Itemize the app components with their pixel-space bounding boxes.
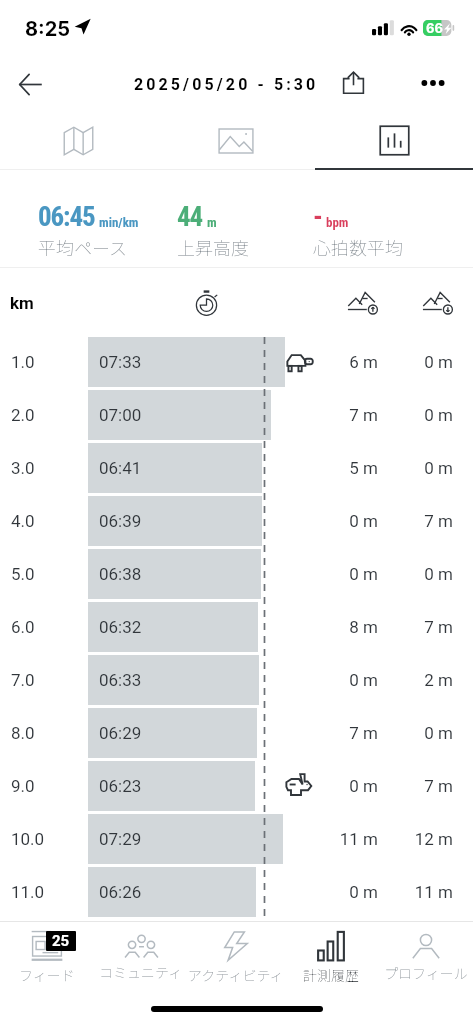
staticText: 0 m bbox=[398, 352, 453, 372]
staticText: 07:00 bbox=[99, 405, 142, 425]
button[interactable]: 6.0 bbox=[0, 602, 473, 655]
button[interactable]: 4.0 bbox=[0, 496, 473, 549]
button[interactable]: Photos bbox=[157, 112, 315, 169]
button[interactable]: アクティビティ bbox=[188, 922, 283, 993]
button[interactable]: 11.0 bbox=[0, 867, 473, 920]
button[interactable]: Charts bbox=[315, 112, 473, 169]
staticText: 06:45 bbox=[38, 201, 95, 233]
button[interactable]: Map bbox=[0, 112, 157, 169]
button[interactable]: 25 bbox=[0, 922, 94, 993]
staticText: m bbox=[207, 215, 217, 230]
button[interactable]: 5.0 bbox=[0, 549, 473, 602]
staticText: 7 m bbox=[398, 617, 453, 637]
staticText: 5 m bbox=[323, 458, 378, 478]
staticText: 11.0 bbox=[11, 882, 45, 902]
staticText: km bbox=[10, 293, 34, 313]
button[interactable]: 3.0 bbox=[0, 443, 473, 496]
staticText: 4.0 bbox=[11, 511, 35, 531]
staticText: 0 m bbox=[323, 670, 378, 690]
staticText: 07:29 bbox=[99, 829, 142, 849]
staticText: 6.0 bbox=[11, 617, 35, 637]
button[interactable]: プロフィール bbox=[378, 922, 473, 993]
staticText: 06:41 bbox=[99, 458, 142, 478]
staticText: 7 m bbox=[323, 723, 378, 743]
staticText: 9.0 bbox=[11, 776, 35, 796]
staticText: 0 m bbox=[323, 776, 378, 796]
staticText: min/km bbox=[99, 215, 139, 230]
staticText: 25 bbox=[52, 932, 70, 950]
staticText: 5.0 bbox=[11, 564, 35, 584]
staticText: 2.0 bbox=[11, 405, 35, 425]
staticText: 06:29 bbox=[99, 723, 142, 743]
staticText: 66 bbox=[426, 20, 443, 36]
staticText: コミュニティ bbox=[99, 962, 183, 982]
staticText: アクティビティ bbox=[188, 965, 283, 985]
staticText: 0 m bbox=[323, 511, 378, 531]
staticText: 8.0 bbox=[11, 723, 35, 743]
staticText: プロフィール bbox=[384, 963, 468, 983]
staticText: 12 m bbox=[398, 829, 453, 849]
staticText: 3.0 bbox=[11, 458, 35, 478]
staticText: 1.0 bbox=[11, 352, 35, 372]
staticText: 0 m bbox=[398, 564, 453, 584]
staticText: - bbox=[313, 201, 322, 233]
staticText: 11 m bbox=[398, 882, 453, 902]
staticText: 0 m bbox=[323, 882, 378, 902]
button[interactable]: 計測履歴 bbox=[283, 922, 378, 993]
button[interactable]: 8.0 bbox=[0, 708, 473, 761]
staticText: 心拍数平均 bbox=[313, 234, 403, 260]
staticText: bpm bbox=[326, 215, 349, 230]
staticText: 0 m bbox=[398, 723, 453, 743]
staticText: 06:38 bbox=[99, 564, 142, 584]
button[interactable]: 9.0 bbox=[0, 761, 473, 814]
staticText: 7.0 bbox=[11, 670, 35, 690]
staticText: 8 m bbox=[323, 617, 378, 637]
staticText: 7 m bbox=[398, 511, 453, 531]
staticText: 07:33 bbox=[99, 352, 142, 372]
staticText: 6 m bbox=[323, 352, 378, 372]
staticText: 06:23 bbox=[99, 776, 142, 796]
staticText: 0 m bbox=[398, 458, 453, 478]
button[interactable]: 10.0 bbox=[0, 814, 473, 867]
staticText: 2025/05/20 - 5:30 bbox=[134, 75, 319, 94]
staticText: 7 m bbox=[398, 776, 453, 796]
staticText: 06:32 bbox=[99, 617, 142, 637]
staticText: フィード bbox=[19, 965, 75, 985]
button[interactable]: More options bbox=[410, 60, 455, 105]
staticText: 10.0 bbox=[11, 829, 45, 849]
button[interactable]: コミュニティ bbox=[94, 922, 188, 993]
staticText: 2 m bbox=[398, 670, 453, 690]
staticText: 平均ペース bbox=[38, 234, 128, 260]
staticText: 0 m bbox=[398, 405, 453, 425]
staticText: 計測履歴 bbox=[303, 965, 359, 985]
staticText: 06:33 bbox=[99, 670, 142, 690]
staticText: 06:26 bbox=[99, 882, 142, 902]
button[interactable]: 2.0 bbox=[0, 390, 473, 443]
staticText: 06:39 bbox=[99, 511, 142, 531]
staticText: 上昇高度 bbox=[177, 234, 249, 260]
staticText: 44 bbox=[177, 201, 203, 233]
button[interactable]: 1.0 bbox=[0, 337, 473, 390]
staticText: 7 m bbox=[323, 405, 378, 425]
staticText: 8:25 bbox=[25, 17, 71, 41]
staticText: 11 m bbox=[323, 829, 378, 849]
button[interactable]: Back bbox=[6, 60, 54, 108]
button[interactable]: 7.0 bbox=[0, 655, 473, 708]
staticText: 0 m bbox=[323, 564, 378, 584]
button[interactable]: Share bbox=[331, 60, 376, 105]
